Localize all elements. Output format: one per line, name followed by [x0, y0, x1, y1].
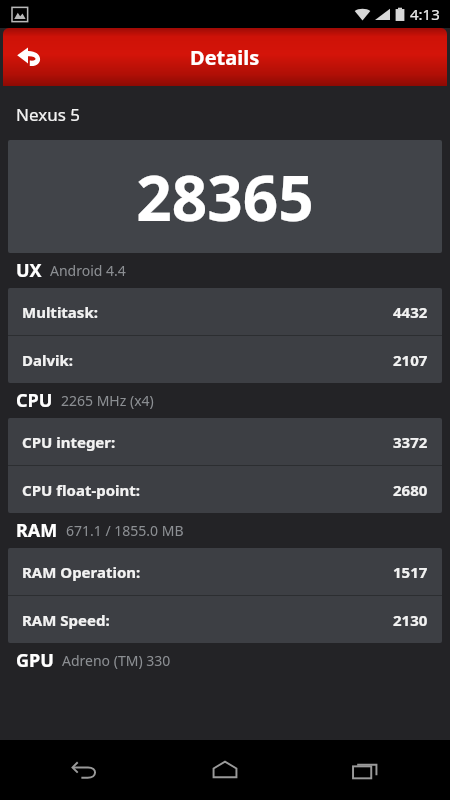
staticText: RAM Operation: — [22, 562, 141, 582]
button[interactable]: Back — [3, 29, 59, 85]
staticText: 671.1 / 1855.0 MB — [66, 521, 184, 540]
button[interactable]: Back — [30, 740, 140, 800]
button[interactable]: CPU float-point: — [8, 466, 442, 513]
staticText: Details — [190, 44, 260, 71]
staticText: 2265 MHz (x4) — [61, 391, 154, 410]
button[interactable]: Multitask: — [8, 288, 442, 335]
staticText: RAM Speed: — [22, 610, 110, 630]
staticText: 4432 — [393, 302, 428, 322]
button[interactable]: Dalvik: — [8, 336, 442, 383]
staticText: 1517 — [393, 562, 428, 582]
staticText: CPU integer: — [22, 432, 116, 452]
button[interactable]: Recent apps — [310, 740, 420, 800]
staticText: 4:13 — [410, 4, 440, 24]
staticText: 28365 — [136, 155, 314, 239]
staticText: UX — [16, 258, 42, 283]
staticText: CPU float-point: — [22, 480, 141, 500]
staticText: RAM — [16, 518, 58, 543]
staticText: Dalvik: — [22, 350, 74, 370]
staticText: 2130 — [393, 610, 428, 630]
staticText: Adreno (TM) 330 — [62, 651, 171, 670]
staticText: CPU — [16, 388, 53, 413]
button[interactable]: 28365 — [8, 140, 442, 253]
button[interactable]: CPU integer: — [8, 418, 442, 465]
staticText: 3372 — [393, 432, 428, 452]
staticText: Nexus 5 — [16, 103, 80, 126]
button[interactable]: RAM Speed: — [8, 596, 442, 643]
button[interactable]: RAM Operation: — [8, 548, 442, 595]
staticText: 2680 — [393, 480, 428, 500]
staticText: GPU — [16, 648, 54, 673]
staticText: 2107 — [393, 350, 428, 370]
staticText: Multitask: — [22, 302, 98, 322]
staticText: Android 4.4 — [50, 261, 126, 280]
button[interactable]: Home — [170, 740, 280, 800]
